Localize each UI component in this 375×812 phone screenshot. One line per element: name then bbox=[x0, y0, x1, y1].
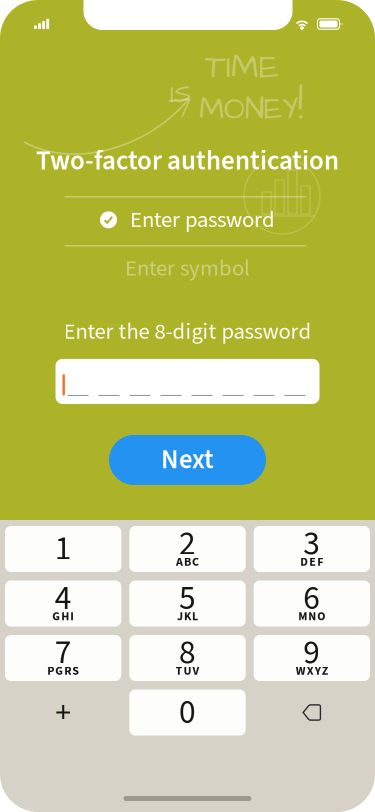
staticText: 1 bbox=[55, 525, 72, 573]
button[interactable]: 2 bbox=[129, 526, 246, 572]
staticText: TIME bbox=[205, 44, 279, 90]
button[interactable]: Delete bbox=[254, 689, 370, 735]
button[interactable]: 6 bbox=[254, 580, 370, 626]
staticText: 3 bbox=[303, 520, 320, 568]
staticText: G H I bbox=[52, 608, 74, 625]
button[interactable]: Next bbox=[109, 435, 266, 485]
staticText: 6 bbox=[303, 575, 320, 622]
button[interactable]: 9 bbox=[254, 635, 370, 681]
staticText: T U V bbox=[175, 662, 199, 680]
staticText: ! bbox=[298, 80, 303, 134]
button[interactable]: + bbox=[5, 689, 121, 735]
staticText: Two-factor authentication bbox=[36, 142, 339, 180]
staticText: J K L bbox=[177, 608, 198, 625]
staticText: D E F bbox=[300, 553, 323, 571]
staticText: W X Y Z bbox=[296, 662, 328, 680]
staticText: Enter the 8-digit password bbox=[63, 316, 311, 348]
staticText: 5 bbox=[179, 575, 196, 622]
staticText: 9 bbox=[303, 629, 320, 677]
button[interactable]: 1 bbox=[5, 526, 121, 572]
button[interactable]: 0 bbox=[129, 689, 246, 735]
button[interactable]: 3 bbox=[254, 526, 370, 572]
staticText: IS bbox=[170, 76, 191, 113]
staticText: A B C bbox=[176, 553, 199, 571]
button[interactable]: 7 bbox=[5, 635, 121, 681]
staticText: P G R S bbox=[47, 662, 79, 680]
staticText: Enter password bbox=[130, 204, 275, 236]
staticText: 2 bbox=[179, 520, 196, 568]
staticText: 4 bbox=[55, 575, 72, 622]
staticText: + bbox=[55, 690, 71, 735]
staticText: Next bbox=[161, 441, 214, 479]
button[interactable]: 4 bbox=[5, 580, 121, 626]
staticText: 8 bbox=[179, 629, 196, 677]
staticText: M N O bbox=[298, 608, 325, 625]
button[interactable]: 5 bbox=[129, 580, 246, 626]
button[interactable]: 8 bbox=[129, 635, 246, 681]
staticText: 7 bbox=[55, 629, 72, 677]
staticText: 0 bbox=[179, 689, 196, 736]
staticText: MONEY bbox=[199, 88, 298, 131]
staticText: Enter symbol bbox=[125, 252, 250, 285]
